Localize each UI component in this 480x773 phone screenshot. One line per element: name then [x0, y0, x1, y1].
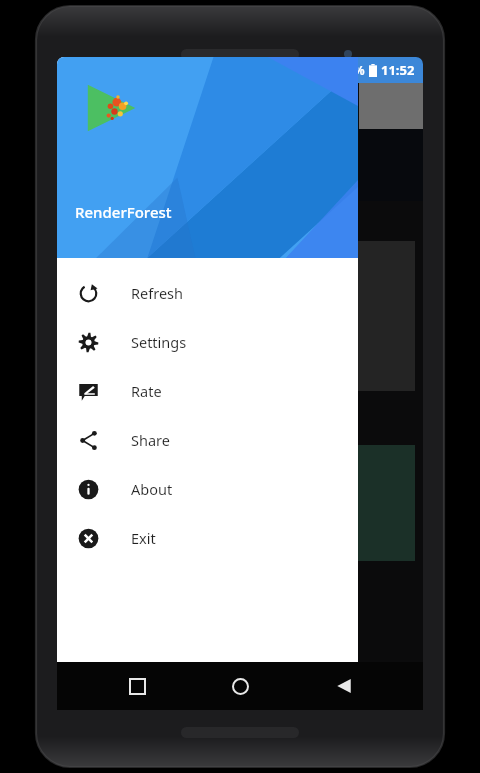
staticText: Settings — [131, 332, 187, 352]
button[interactable]: Share — [57, 415, 358, 464]
staticText: Rate — [131, 381, 162, 401]
button[interactable]: Home — [216, 662, 264, 710]
staticText: Share — [131, 430, 170, 450]
button[interactable]: Refresh — [57, 268, 358, 317]
button[interactable]: Back — [320, 662, 368, 710]
staticText: Exit — [131, 528, 156, 548]
button[interactable]: Recent apps — [113, 662, 161, 710]
staticText: 68% — [340, 62, 365, 78]
button[interactable]: About — [57, 464, 358, 513]
staticText: Refresh — [131, 283, 183, 303]
staticText: RenderForest — [75, 202, 172, 222]
staticText: 11:52 — [381, 61, 415, 79]
button[interactable]: Rate — [57, 366, 358, 415]
staticText: 4G — [284, 61, 292, 69]
button[interactable]: Settings — [57, 317, 358, 366]
staticText: 4G — [267, 61, 284, 79]
button[interactable]: Exit — [57, 513, 358, 562]
staticText: About — [131, 479, 173, 499]
